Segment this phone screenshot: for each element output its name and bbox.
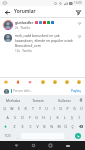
button[interactable]: Ö [62, 122, 69, 131]
button[interactable]: Filter [74, 8, 82, 16]
staticText: V [36, 124, 39, 129]
button[interactable]: Emoji 7 [76, 79, 82, 85]
staticText: J [50, 115, 51, 120]
staticText: İ [78, 115, 80, 120]
button[interactable]: Yorum ekle... [11, 89, 70, 93]
button[interactable]: Merhaba [0, 95, 25, 104]
staticText: Kullanıcı [58, 98, 71, 102]
staticText: X [21, 124, 24, 129]
button[interactable]: Emoji 4 [40, 79, 46, 85]
button[interactable]: U [43, 104, 50, 113]
button[interactable]: Back [8, 141, 25, 150]
staticText: K [56, 115, 59, 120]
button[interactable]: Emoji 1 [3, 79, 9, 85]
button[interactable]: O [57, 104, 64, 113]
button[interactable]: Q [0, 104, 8, 113]
button[interactable]: Shift [0, 122, 10, 131]
button[interactable]: meli_cadd bonushesl en çok [0, 30, 85, 53]
button[interactable]: Kullanıcı [51, 95, 77, 104]
button[interactable]: P [64, 104, 71, 113]
button[interactable]: Ü [78, 104, 85, 113]
button[interactable]: D [19, 113, 26, 122]
button[interactable]: Like [76, 20, 82, 26]
button[interactable]: V [34, 122, 41, 131]
button[interactable]: Like [76, 33, 82, 39]
staticText: B [43, 124, 46, 129]
button[interactable]: Tamam [25, 95, 51, 104]
staticText: Paylaş [71, 89, 81, 93]
button[interactable]: H [40, 113, 47, 122]
button[interactable]: W [8, 104, 15, 113]
button[interactable]: Back [3, 8, 11, 16]
staticText: Ğ [73, 106, 76, 111]
staticText: R [24, 106, 27, 111]
button[interactable]: K [54, 113, 61, 122]
button[interactable]: İ [75, 113, 82, 122]
staticText: Ö [64, 124, 67, 129]
staticText: Tamam [32, 98, 44, 102]
staticText: P [66, 106, 69, 111]
button[interactable]: X [18, 122, 26, 131]
button[interactable]: Send [71, 132, 84, 140]
staticText: Ç [71, 124, 74, 129]
staticText: A [6, 115, 9, 120]
staticText: Z [13, 124, 16, 129]
button[interactable]: Paylaş [70, 88, 82, 94]
staticText: W [10, 106, 14, 111]
staticText: Y [39, 106, 41, 111]
button[interactable]: gizelzadler [0, 18, 85, 30]
button[interactable]: ?123 [1, 132, 14, 140]
staticText: 13:00 [74, 1, 82, 5]
button[interactable]: Backspace [76, 122, 85, 131]
button[interactable]: Home [25, 141, 42, 150]
staticText: T [32, 106, 34, 111]
button[interactable]: S [11, 113, 19, 122]
staticText: F [29, 115, 31, 120]
button[interactable]: T [29, 104, 36, 113]
staticText: , [17, 134, 18, 139]
button[interactable]: F [26, 113, 33, 122]
button[interactable]: Ç [69, 122, 76, 131]
button[interactable]: Y [36, 104, 43, 113]
button[interactable]: M [55, 122, 62, 131]
staticText: I [53, 106, 55, 111]
button[interactable]: Recent apps [42, 141, 59, 150]
button[interactable]: Voice input [77, 95, 85, 104]
staticText: 12s Yanıtla [15, 49, 32, 53]
button[interactable]: E [15, 104, 22, 113]
staticText: U [45, 106, 48, 111]
button[interactable]: B [41, 122, 48, 131]
staticText: N [50, 124, 53, 129]
staticText: gizelzadler [15, 20, 34, 25]
staticText: kazandıran, elimde en popüler ortak [15, 38, 73, 43]
button[interactable]: Emoji 5 [52, 79, 58, 85]
button[interactable]: Emoji 2 [15, 79, 21, 85]
staticText: Merhaba [6, 98, 20, 102]
button[interactable]: L [61, 113, 68, 122]
button[interactable]: C [26, 122, 34, 131]
staticText: G [35, 115, 38, 120]
button[interactable]: Ş [68, 113, 75, 122]
button[interactable]: N [48, 122, 55, 131]
staticText: O [59, 106, 62, 111]
staticText: ?123 [4, 134, 11, 138]
button[interactable]: J [47, 113, 54, 122]
button[interactable]: Comma [14, 132, 20, 140]
button[interactable]: Emoji 3 [27, 79, 33, 85]
button[interactable]: Ğ [71, 104, 78, 113]
button[interactable]: Z [10, 122, 18, 131]
button[interactable]: G [33, 113, 40, 122]
staticText: Ü [80, 106, 83, 111]
staticText: S [14, 115, 16, 120]
staticText: D [21, 115, 24, 120]
button[interactable]: R [22, 104, 29, 113]
button[interactable]: I [50, 104, 57, 113]
button[interactable]: A [3, 113, 11, 122]
button[interactable]: Switch keyboard [59, 141, 76, 150]
button[interactable]: Emoji 6 [64, 79, 70, 85]
staticText: . [68, 134, 69, 139]
staticText: Q [3, 106, 6, 111]
staticText: 2s Yanıtla [15, 26, 30, 30]
